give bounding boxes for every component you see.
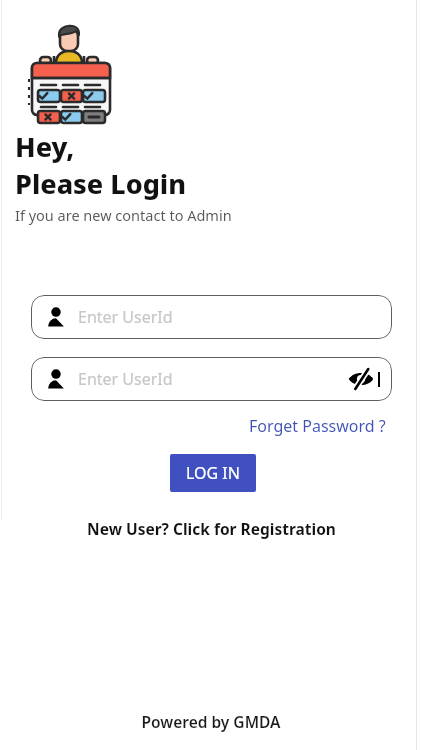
staticText: New User? Click for Registration [87, 518, 336, 539]
button[interactable]: LOG IN [170, 454, 256, 492]
staticText: If you are new contact to Admin [15, 205, 232, 225]
button[interactable]: New User? Click for Registration [83, 516, 340, 541]
staticText: Hey, [15, 128, 75, 165]
staticText: Forget Password ? [249, 415, 386, 437]
button[interactable]: Enter UserId [31, 295, 392, 339]
button[interactable]: Toggle password visibility [346, 367, 376, 391]
button[interactable]: Forget Password ? [247, 413, 388, 439]
staticText: Powered by GMDA [0, 711, 422, 732]
staticText: Enter UserId [78, 306, 173, 328]
staticText: Please Login [15, 165, 187, 202]
button[interactable]: Enter UserId [31, 357, 392, 401]
staticText: Enter UserId [78, 368, 173, 390]
staticText: LOG IN [186, 462, 240, 484]
